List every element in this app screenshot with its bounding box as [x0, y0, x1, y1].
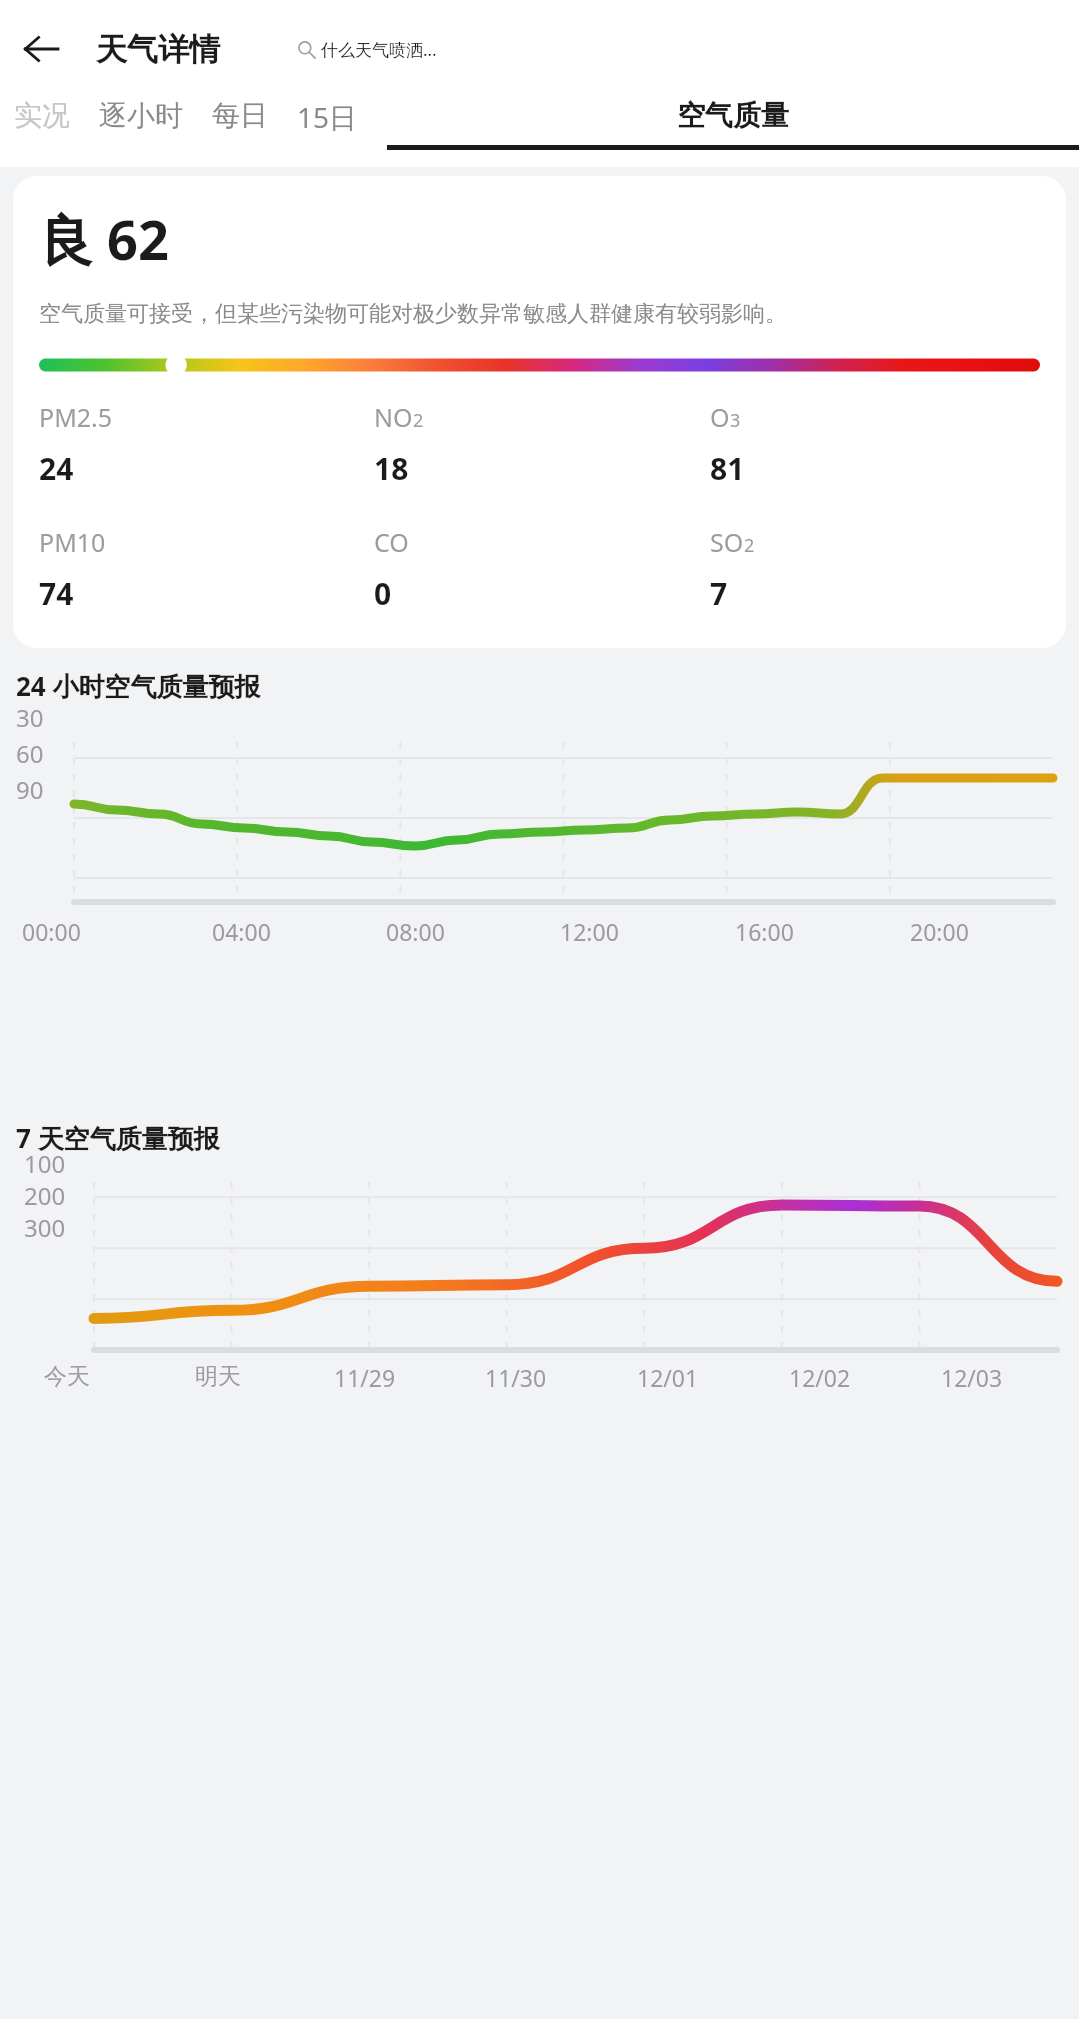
staticText: 3 — [730, 408, 741, 433]
staticText: 15日 — [297, 98, 358, 136]
staticText: 2 — [744, 533, 755, 558]
staticText: 12/02 — [789, 1362, 851, 1393]
button[interactable]: 15日 — [297, 98, 358, 136]
button[interactable]: 空气质量 — [387, 98, 1079, 150]
staticText: PM10 — [39, 525, 106, 559]
staticText: 90 — [16, 773, 44, 806]
button[interactable]: 每日 — [212, 98, 268, 133]
staticText: 04:00 — [212, 916, 271, 947]
staticText: CO — [374, 525, 409, 559]
staticText: 12/01 — [637, 1362, 699, 1393]
staticText: 74 — [39, 573, 74, 614]
staticText: 60 — [16, 737, 44, 770]
staticText: 0 — [374, 573, 392, 614]
staticText: 11/30 — [485, 1362, 547, 1393]
staticText: 实况 — [14, 98, 70, 133]
staticText: 300 — [24, 1211, 66, 1244]
staticText: 62 — [107, 202, 169, 276]
staticText: 08:00 — [386, 916, 445, 947]
staticText: 什么天气喷洒... — [321, 38, 437, 61]
staticText: 空气质量 — [677, 98, 789, 133]
button[interactable]: 实况 — [14, 98, 70, 133]
staticText: 天气详情 — [96, 30, 220, 69]
staticText: 24 小时空气质量预报 — [16, 668, 261, 704]
staticText: 30 — [16, 701, 44, 734]
staticText: 200 — [24, 1179, 66, 1212]
staticText: 12/03 — [941, 1362, 1003, 1393]
staticText: PM2.5 — [39, 400, 113, 434]
staticText: 18 — [374, 448, 409, 489]
staticText: 今天 — [44, 1362, 90, 1391]
staticText: 20:00 — [910, 916, 969, 947]
button[interactable]: 良 — [13, 176, 1066, 648]
button[interactable]: 什么天气喷洒... — [285, 33, 509, 66]
staticText: 100 — [24, 1147, 66, 1180]
staticText: 7 — [710, 573, 728, 614]
staticText: 12:00 — [560, 916, 619, 947]
staticText: 每日 — [212, 98, 268, 133]
staticText: 11/29 — [334, 1362, 396, 1393]
staticText: O — [710, 400, 730, 434]
button[interactable]: 返回 — [10, 18, 72, 80]
staticText: 良 — [39, 208, 93, 276]
staticText: 81 — [710, 448, 745, 489]
staticText: 16:00 — [735, 916, 794, 947]
staticText: 2 — [413, 408, 424, 433]
staticText: 24 — [39, 448, 74, 489]
staticText: 7 天空气质量预报 — [16, 1120, 220, 1156]
staticText: NO — [374, 400, 413, 434]
staticText: 00:00 — [22, 916, 81, 947]
staticText: 空气质量可接受，但某些污染物可能对极少数异常敏感人群健康有较弱影响。 — [39, 300, 787, 328]
staticText: 逐小时 — [99, 98, 183, 133]
button[interactable]: 逐小时 — [99, 98, 183, 133]
staticText: SO — [710, 525, 744, 559]
staticText: 明天 — [195, 1362, 241, 1391]
